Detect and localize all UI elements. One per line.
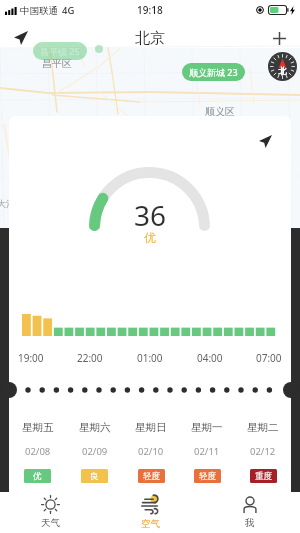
staticText: 我 bbox=[245, 517, 255, 529]
staticText: 19:18 bbox=[137, 3, 163, 17]
staticText: 04:00 bbox=[197, 351, 223, 365]
staticText: 02/12 bbox=[250, 445, 276, 458]
staticText: 01:00 bbox=[137, 351, 163, 365]
button[interactable]: Compass bbox=[268, 52, 297, 81]
button[interactable]: 顺义新城 23 bbox=[189, 66, 238, 78]
button[interactable]: 我 bbox=[200, 492, 300, 533]
staticText: 中国联通 bbox=[20, 5, 58, 17]
staticText: 昌平区 bbox=[42, 57, 72, 70]
staticText: 36 bbox=[134, 196, 167, 234]
staticText: 22:00 bbox=[77, 351, 103, 365]
button[interactable]: 星期六 bbox=[66, 421, 123, 483]
button[interactable]: 星期五 bbox=[9, 421, 66, 483]
staticText: 星期日 bbox=[135, 421, 167, 434]
staticText: 星期二 bbox=[247, 421, 279, 434]
staticText: 北京 bbox=[135, 29, 165, 48]
button[interactable]: 星期一 bbox=[179, 421, 235, 483]
staticText: 轻度 bbox=[143, 471, 160, 482]
staticText: 02/08 bbox=[25, 445, 51, 458]
staticText: 星期五 bbox=[22, 421, 54, 434]
staticText: 02/11 bbox=[194, 445, 220, 458]
staticText: 昌平镇 25 bbox=[40, 45, 80, 57]
button[interactable]: Locate me bbox=[6, 23, 36, 53]
staticText: 良 bbox=[90, 471, 99, 482]
staticText: 19:00 bbox=[18, 351, 44, 365]
staticText: 星期六 bbox=[79, 421, 111, 434]
button[interactable]: 星期二 bbox=[235, 421, 291, 483]
button[interactable]: 星期日 bbox=[123, 421, 179, 483]
staticText: 优 bbox=[33, 471, 42, 482]
button[interactable]: 空气 bbox=[100, 492, 200, 533]
staticText: 02/10 bbox=[138, 445, 164, 458]
staticText: 07:00 bbox=[256, 351, 282, 365]
staticText: 顺义新城 23 bbox=[189, 66, 238, 78]
staticText: 大浴 bbox=[0, 198, 15, 209]
staticText: 02/09 bbox=[82, 445, 108, 458]
staticText: 顺义区 bbox=[205, 105, 235, 118]
staticText: 天气 bbox=[41, 517, 60, 529]
button[interactable]: Navigate bbox=[251, 127, 279, 155]
staticText: 北 bbox=[278, 66, 287, 77]
staticText: 轻度 bbox=[199, 471, 216, 482]
button[interactable]: 天气 bbox=[0, 492, 100, 533]
staticText: 优 bbox=[144, 230, 156, 245]
staticText: 空气 bbox=[141, 518, 160, 530]
staticText: 重度 bbox=[255, 471, 272, 482]
staticText: 4G bbox=[62, 4, 75, 17]
button[interactable]: Add city bbox=[264, 23, 294, 53]
staticText: 星期一 bbox=[191, 421, 223, 434]
